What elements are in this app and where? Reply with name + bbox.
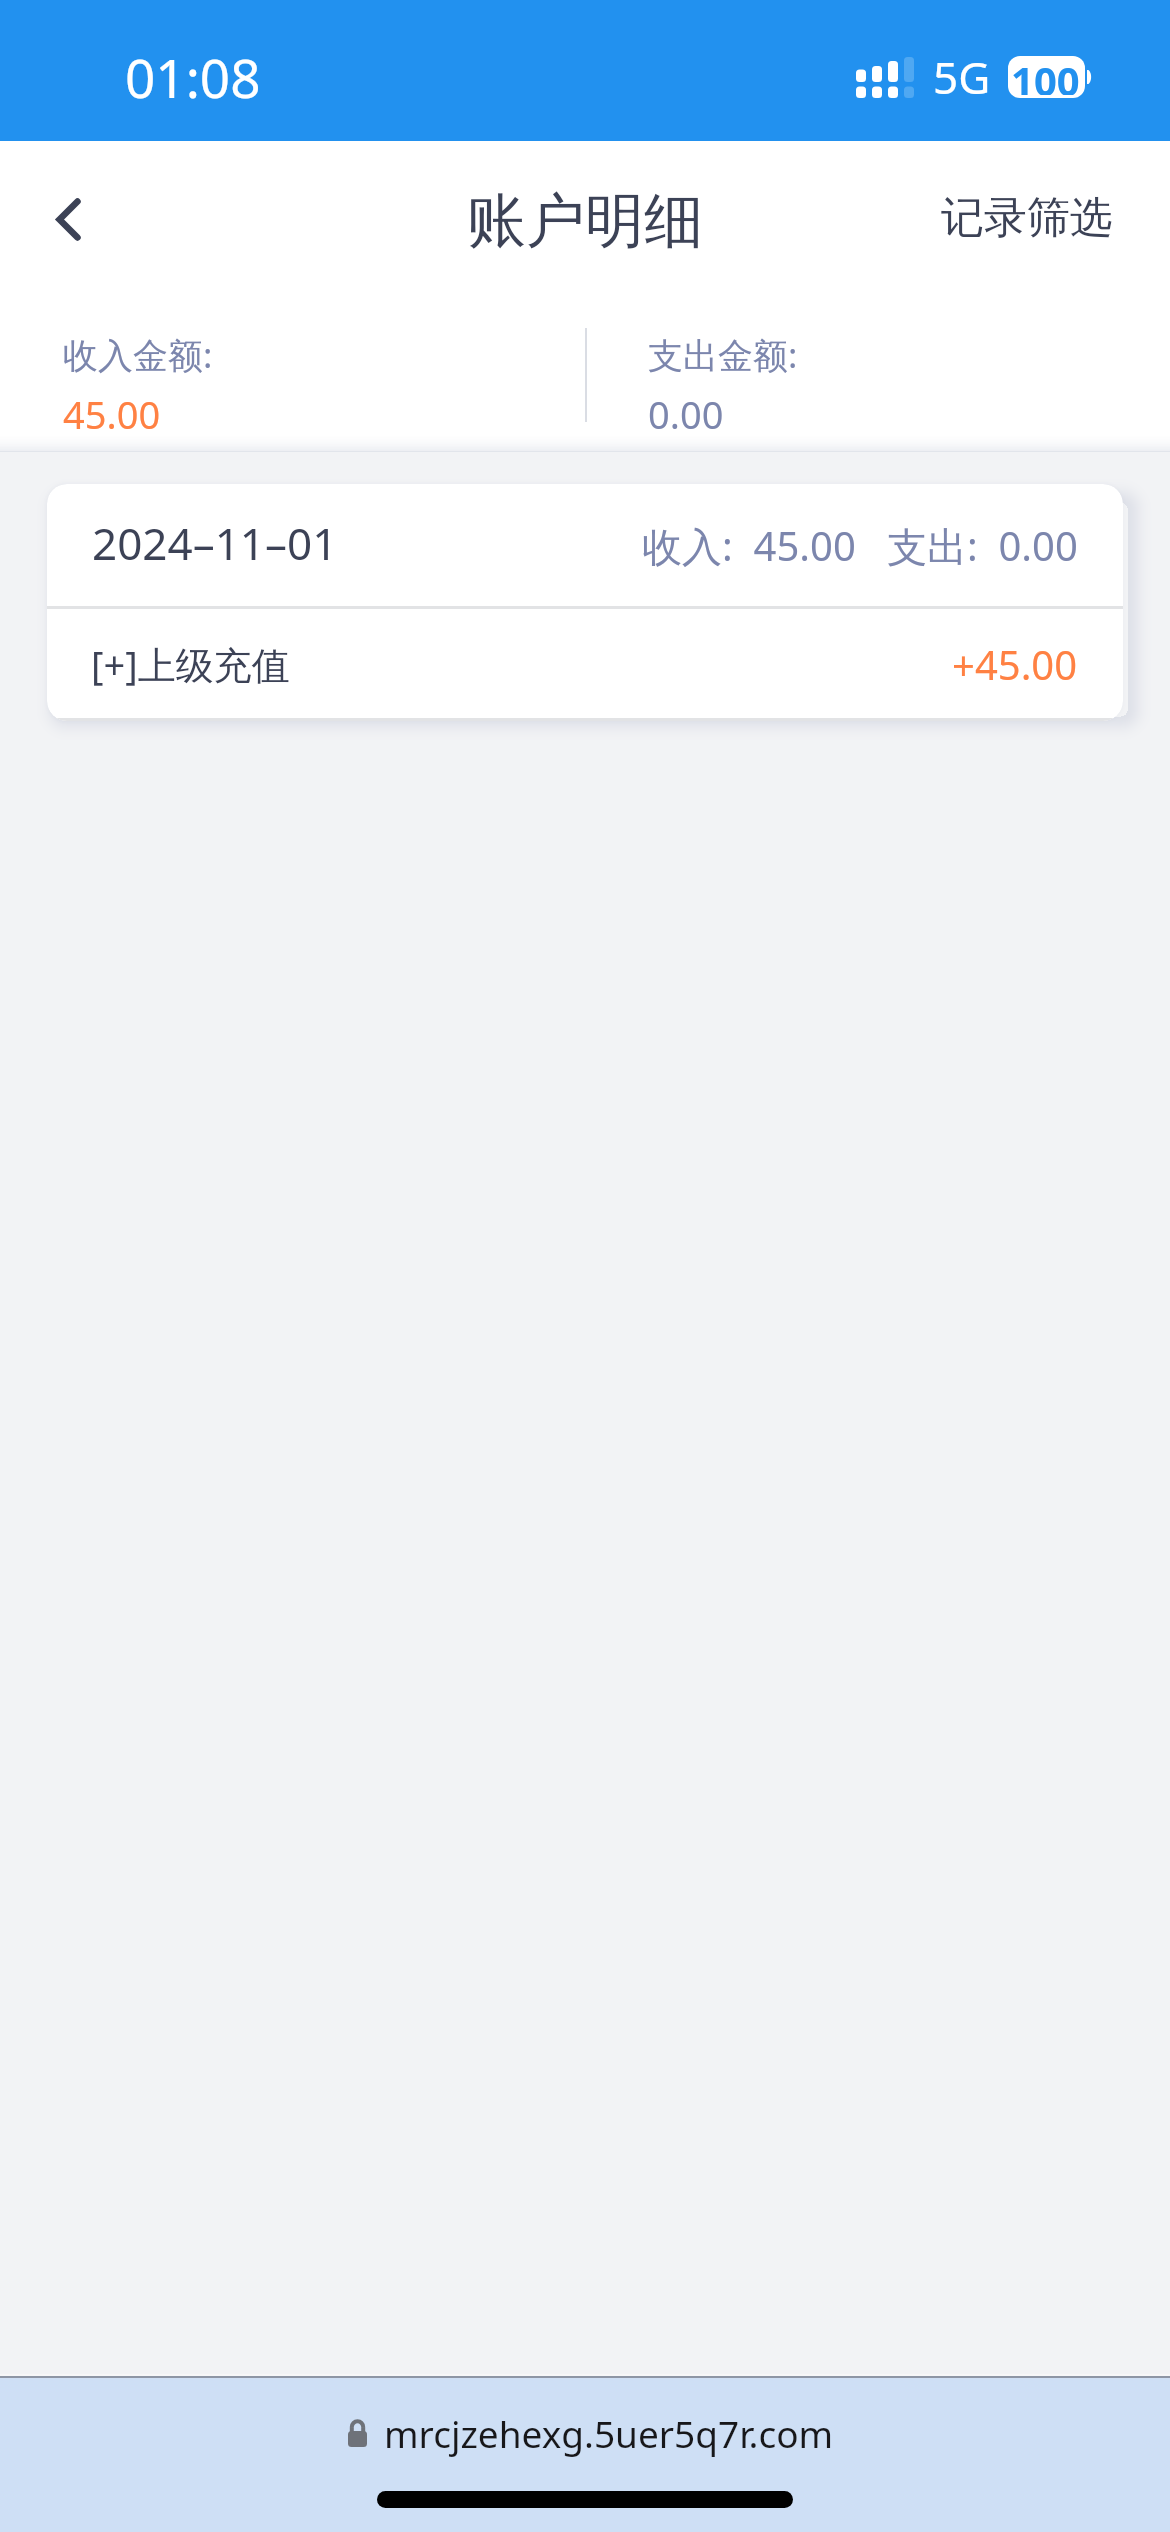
staticText: 100 bbox=[1011, 56, 1080, 95]
staticText: 收入金额: bbox=[63, 331, 213, 379]
staticText: 45.00 bbox=[63, 388, 161, 440]
staticText: 记录筛选 bbox=[941, 191, 1113, 245]
button[interactable]: [+]上级充值 bbox=[47, 609, 1123, 718]
button[interactable]: Back bbox=[0, 141, 140, 301]
staticText: 收入: 45.00 支出: 0.00 bbox=[642, 518, 1078, 573]
button[interactable]: 2024–11–01 bbox=[47, 484, 1123, 606]
staticText: 01:08 bbox=[125, 41, 261, 113]
staticText: 5G bbox=[933, 47, 991, 107]
staticText: 支出金额: bbox=[648, 331, 798, 379]
button[interactable]: mrcjzehexg.5uer5q7r.com bbox=[348, 2408, 834, 2458]
staticText: mrcjzehexg.5uer5q7r.com bbox=[384, 2408, 834, 2458]
staticText: 0.00 bbox=[648, 388, 724, 440]
staticText: 2024–11–01 bbox=[92, 513, 338, 573]
staticText: [+]上级充值 bbox=[91, 638, 290, 690]
staticText: +45.00 bbox=[952, 637, 1078, 691]
button[interactable]: 记录筛选 bbox=[938, 162, 1170, 280]
staticText: 账户明细 bbox=[467, 184, 703, 258]
